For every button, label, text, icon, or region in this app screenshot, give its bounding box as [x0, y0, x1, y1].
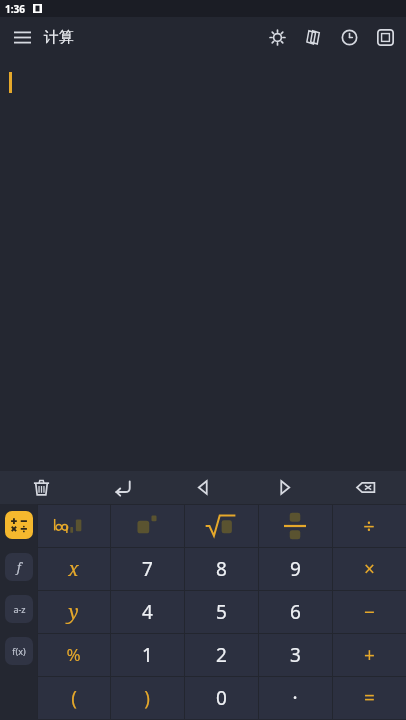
- button[interactable]: [37, 504, 110, 547]
- button[interactable]: (: [37, 676, 110, 719]
- button[interactable]: 3: [258, 633, 332, 676]
- staticText: ÷: [363, 512, 375, 539]
- button[interactable]: 0: [184, 676, 258, 719]
- button[interactable]: [110, 504, 184, 547]
- staticText: =: [364, 685, 375, 711]
- button[interactable]: 7: [110, 547, 184, 590]
- button[interactable]: 4: [110, 590, 184, 633]
- button[interactable]: Screenshot: [372, 24, 398, 50]
- staticText: 4: [142, 599, 153, 625]
- button[interactable]: ×: [332, 547, 406, 590]
- button[interactable]: [184, 504, 258, 547]
- button[interactable]: %: [37, 633, 110, 676]
- staticText: %: [66, 643, 81, 666]
- button[interactable]: Menu: [9, 24, 35, 50]
- staticText: x: [68, 556, 79, 582]
- button[interactable]: User functions: [5, 637, 33, 665]
- staticText: (: [71, 685, 77, 711]
- button[interactable]: 6: [258, 590, 332, 633]
- staticText: 7: [142, 556, 153, 582]
- button[interactable]: History: [336, 24, 362, 50]
- button[interactable]: Functions f: [5, 553, 33, 581]
- button[interactable]: Enter: [82, 471, 163, 504]
- button[interactable]: x: [37, 547, 110, 590]
- button[interactable]: ·: [258, 676, 332, 719]
- button[interactable]: 2: [184, 633, 258, 676]
- button[interactable]: ): [110, 676, 184, 719]
- staticText: 计算: [44, 28, 74, 47]
- staticText: f: [17, 559, 21, 575]
- staticText: y: [68, 599, 79, 625]
- button[interactable]: =: [332, 676, 406, 719]
- button[interactable]: Brightness: [264, 24, 290, 50]
- button[interactable]: Letters a to z: [5, 595, 33, 623]
- button[interactable]: 9: [258, 547, 332, 590]
- button[interactable]: −: [332, 590, 406, 633]
- staticText: 8: [216, 556, 227, 582]
- button[interactable]: y: [37, 590, 110, 633]
- button[interactable]: [258, 504, 332, 547]
- button[interactable]: Clear all: [0, 471, 82, 504]
- staticText: 6: [290, 599, 301, 625]
- staticText: ×: [364, 556, 375, 582]
- button[interactable]: Arithmetic operators: [5, 511, 33, 539]
- staticText: 0: [216, 685, 227, 711]
- staticText: −: [364, 599, 375, 625]
- button[interactable]: 5: [184, 590, 258, 633]
- staticText: 5: [216, 599, 227, 625]
- staticText: 1: [142, 642, 153, 668]
- button[interactable]: Move right: [244, 471, 325, 504]
- button[interactable]: 1: [110, 633, 184, 676]
- staticText: 2: [216, 642, 227, 668]
- staticText: f(x): [12, 645, 26, 657]
- button[interactable]: Theme: [300, 24, 326, 50]
- staticText: +: [364, 642, 375, 668]
- staticText: 3: [290, 642, 301, 668]
- button[interactable]: +: [332, 633, 406, 676]
- staticText: 9: [290, 556, 301, 582]
- staticText: a-z: [13, 603, 26, 615]
- button[interactable]: Backspace: [325, 471, 406, 504]
- staticText: ·: [292, 685, 298, 711]
- button[interactable]: Move left: [163, 471, 244, 504]
- button[interactable]: ÷: [332, 504, 406, 547]
- button[interactable]: 8: [184, 547, 258, 590]
- staticText: ): [144, 685, 150, 711]
- staticText: 1:36: [5, 2, 25, 16]
